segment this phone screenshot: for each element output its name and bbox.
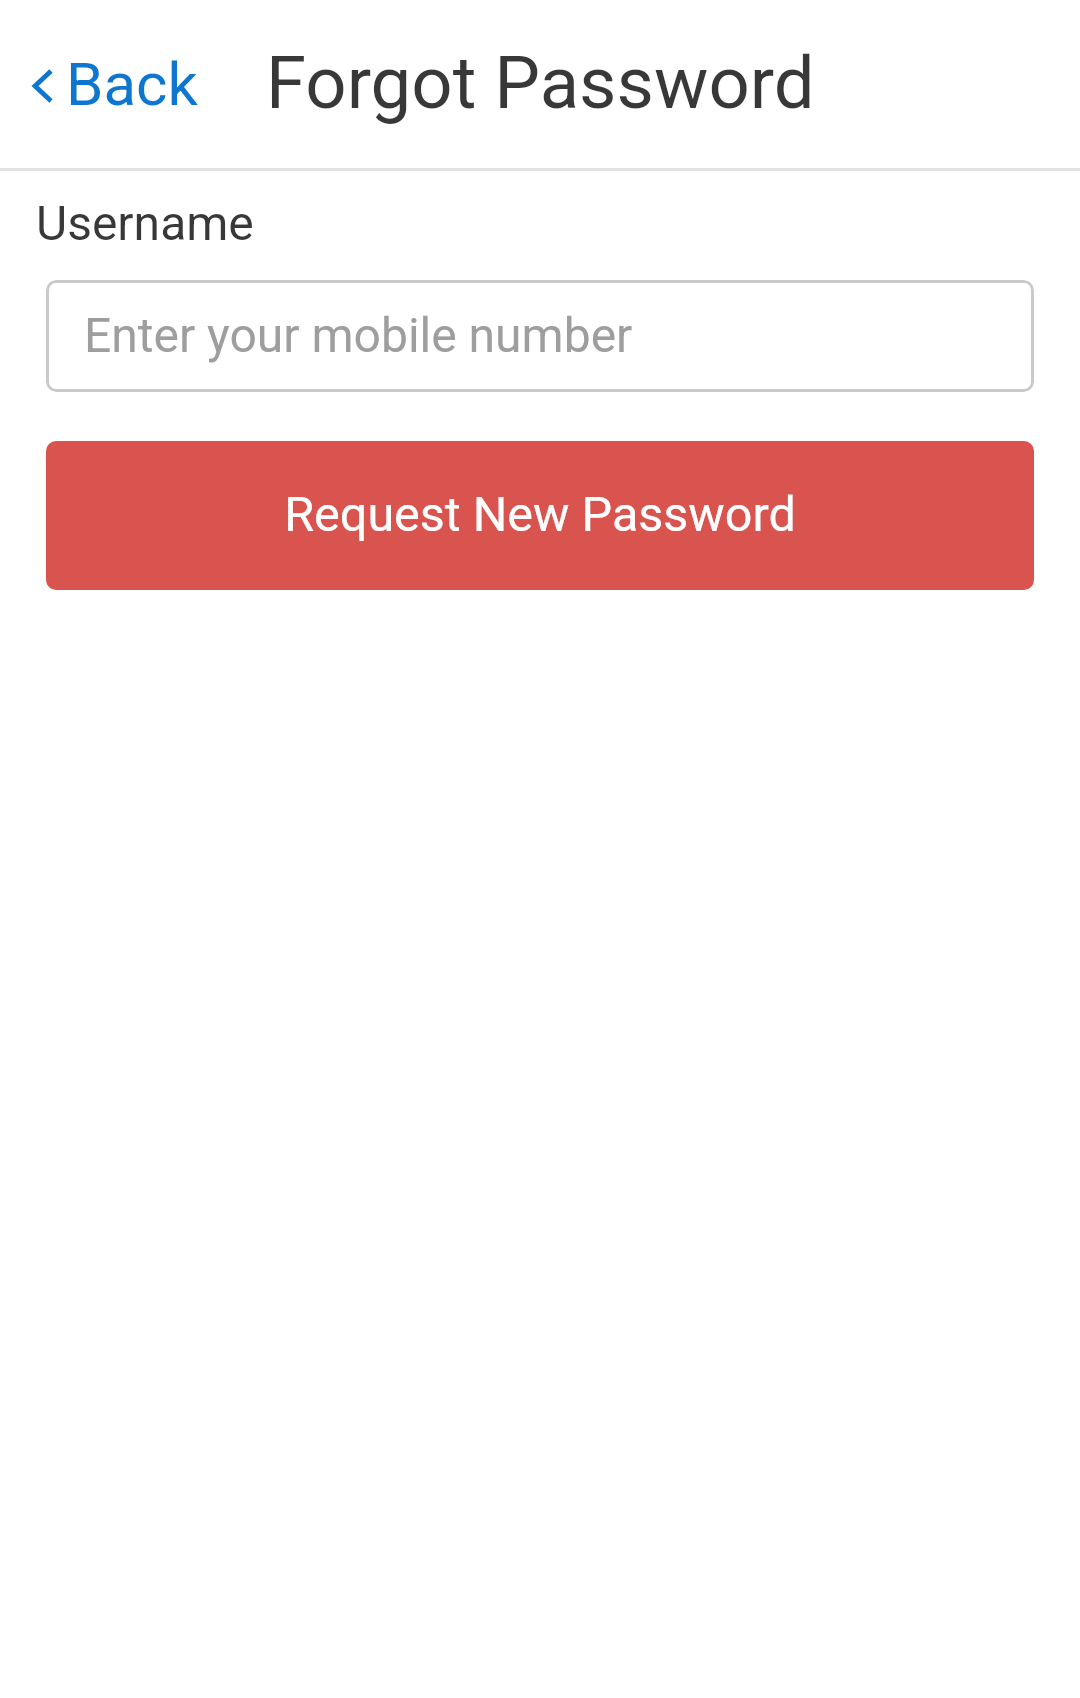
staticText: Enter your mobile number xyxy=(84,307,633,363)
staticText: Back xyxy=(66,49,198,119)
button[interactable]: Request New Password xyxy=(46,441,1034,590)
staticText: Username xyxy=(36,195,254,251)
staticText: Forgot Password xyxy=(266,41,815,126)
button[interactable]: Back xyxy=(17,33,212,135)
staticText: Request New Password xyxy=(284,486,796,543)
button[interactable]: Enter your mobile number xyxy=(46,280,1034,392)
